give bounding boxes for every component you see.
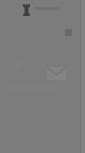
other: Torre Blanca logo <box>23 4 30 16</box>
other: Mail <box>47 67 66 80</box>
staticText: TORRE BLANCA <box>34 6 59 10</box>
